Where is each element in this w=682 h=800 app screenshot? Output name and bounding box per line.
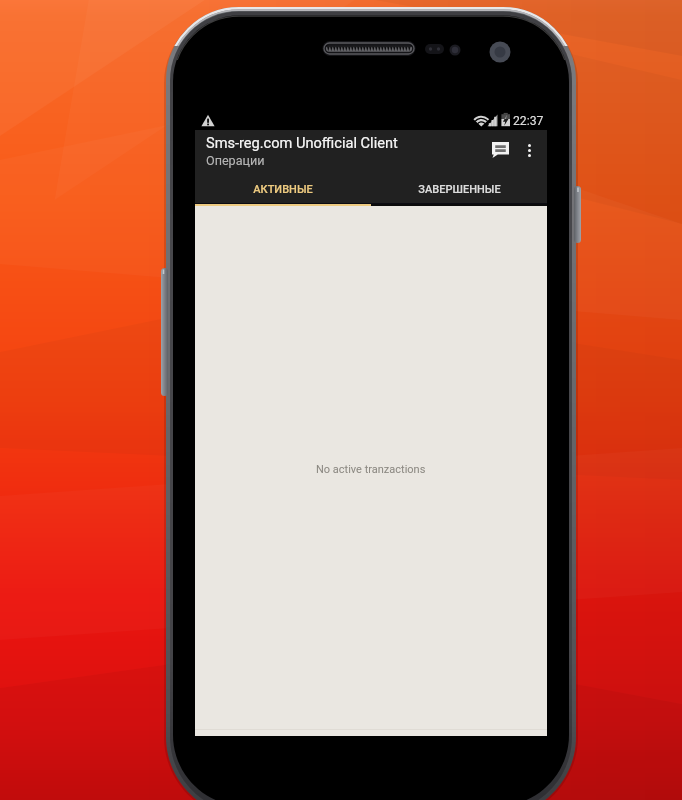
button[interactable]: More options (513, 130, 546, 176)
staticText: Sms-reg.com Unofficial Client (206, 134, 398, 151)
staticText: Операции (206, 153, 265, 168)
button[interactable]: Messages (454, 130, 513, 176)
staticText: АКТИВНЫЕ (253, 183, 313, 196)
staticText: 22:37 (513, 114, 544, 128)
staticText: No active tranzactions (316, 463, 426, 476)
staticText: ЗАВЕРШЕННЫЕ (418, 183, 501, 196)
button[interactable]: ЗАВЕРШЕННЫЕ (371, 176, 547, 203)
button[interactable]: АКТИВНЫЕ (195, 176, 371, 203)
